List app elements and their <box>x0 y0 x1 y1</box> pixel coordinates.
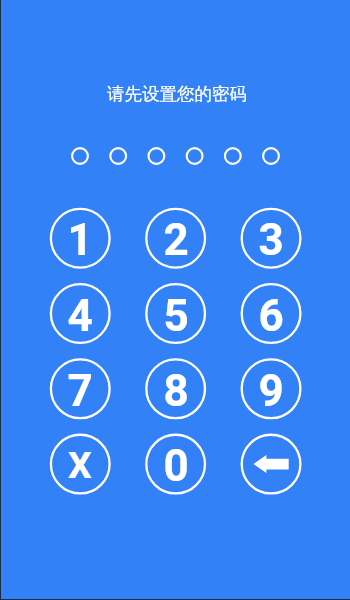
staticText: 1 <box>67 214 93 266</box>
button[interactable]: 9 <box>240 358 302 420</box>
button[interactable]: 1 <box>49 207 111 269</box>
button[interactable]: 2 <box>145 207 207 269</box>
button[interactable]: Clear <box>49 433 111 495</box>
staticText: 7 <box>67 365 93 417</box>
staticText: 9 <box>258 365 284 417</box>
staticText: 请先设置您的密码 <box>107 83 247 105</box>
button[interactable]: 4 <box>49 283 111 345</box>
button[interactable]: 3 <box>240 207 302 269</box>
button[interactable]: Backspace <box>240 433 302 495</box>
staticText: 5 <box>163 290 189 342</box>
button[interactable]: 0 <box>145 433 207 495</box>
staticText: 2 <box>163 214 189 266</box>
staticText: X <box>68 443 92 487</box>
button[interactable]: 8 <box>145 358 207 420</box>
button[interactable]: 7 <box>49 358 111 420</box>
staticText: 3 <box>258 214 284 266</box>
button[interactable]: 5 <box>145 283 207 345</box>
staticText: 4 <box>67 290 93 342</box>
staticText: 0 <box>163 440 189 492</box>
staticText: 6 <box>258 290 284 342</box>
staticText: 8 <box>163 365 189 417</box>
button[interactable]: 6 <box>240 283 302 345</box>
